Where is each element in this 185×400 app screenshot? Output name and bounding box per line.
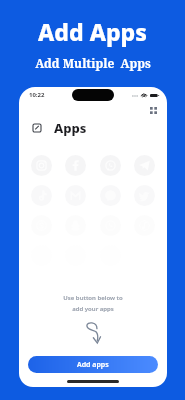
button[interactable]: Menu bbox=[147, 104, 159, 116]
button[interactable]: Telegram bbox=[134, 155, 155, 176]
staticText: Add Multiple Apps bbox=[35, 55, 151, 71]
staticText: add your apps bbox=[72, 305, 114, 313]
button[interactable]: Edit bbox=[30, 121, 44, 135]
staticText: Use button below to bbox=[63, 294, 123, 302]
button[interactable]: Instagram bbox=[31, 155, 52, 176]
button[interactable]: Add apps bbox=[28, 356, 158, 373]
button[interactable]: Facebook bbox=[65, 155, 86, 176]
button[interactable]: WhatsApp bbox=[100, 155, 121, 176]
staticText: 10:22 bbox=[29, 91, 45, 99]
staticText: Add Apps bbox=[38, 16, 147, 47]
staticText: Apps bbox=[54, 119, 87, 137]
staticText: Add apps bbox=[77, 360, 109, 370]
